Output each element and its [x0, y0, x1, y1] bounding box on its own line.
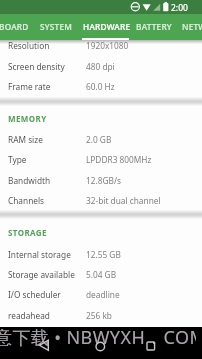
- button[interactable]: readahead: [0, 305, 202, 325]
- button[interactable]: Channels: [0, 190, 202, 210]
- button[interactable]: Internal storage: [0, 244, 202, 264]
- button[interactable]: [141, 336, 161, 356]
- staticText: BOARD: [0, 21, 29, 32]
- button[interactable]: Frame rate: [0, 76, 202, 96]
- button[interactable]: SYSTEM: [40, 15, 73, 37]
- staticText: 2:00: [171, 2, 188, 14]
- button[interactable]: Bandwidth: [0, 170, 202, 190]
- button[interactable]: [34, 335, 54, 355]
- staticText: deadline: [86, 289, 120, 300]
- staticText: Resolution: [8, 40, 50, 51]
- staticText: Bandwidth: [8, 175, 51, 186]
- staticText: RAM size: [8, 134, 43, 145]
- staticText: Channels: [8, 195, 45, 206]
- staticText: 60.0 Hz: [86, 81, 115, 92]
- staticText: Internal storage: [8, 249, 71, 260]
- staticText: 1920x1080: [86, 40, 129, 51]
- staticText: 12.8GB/s: [86, 175, 121, 186]
- staticText: 12.55 GB: [86, 249, 121, 260]
- staticText: Screen density: [8, 61, 65, 72]
- staticText: Storage available: [8, 269, 75, 280]
- button[interactable]: NETWORK: [182, 15, 202, 37]
- button[interactable]: BATTERY: [136, 15, 172, 37]
- button[interactable]: Storage available: [0, 264, 202, 284]
- button[interactable]: Screen density: [0, 56, 202, 76]
- staticText: 5.04 GB: [86, 269, 117, 280]
- button[interactable]: HARDWARE: [83, 15, 131, 37]
- staticText: SYSTEM: [40, 21, 73, 32]
- staticText: 2.0 GB: [86, 134, 112, 145]
- staticText: BATTERY: [136, 21, 172, 32]
- staticText: 32-bit dual channel: [86, 195, 161, 206]
- staticText: Frame rate: [8, 81, 51, 92]
- staticText: readahead: [8, 310, 50, 321]
- button[interactable]: [90, 336, 110, 356]
- staticText: MEMORY: [8, 113, 47, 124]
- staticText: HARDWARE: [83, 21, 131, 32]
- staticText: 256 kb: [86, 310, 112, 321]
- button[interactable]: RAM size: [0, 129, 202, 149]
- button[interactable]: I/O scheduler: [0, 284, 202, 304]
- staticText: STORAGE: [8, 227, 47, 238]
- staticText: NETWORK: [182, 21, 202, 32]
- button[interactable]: Resolution: [0, 35, 202, 55]
- staticText: 意下载 • NBWYXH．COM: [0, 325, 196, 350]
- button[interactable]: BOARD: [0, 15, 29, 37]
- staticText: LPDDR3 800MHz: [86, 154, 152, 165]
- staticText: 480 dpi: [86, 61, 115, 72]
- staticText: I/O scheduler: [8, 289, 61, 300]
- button[interactable]: Type: [0, 149, 202, 169]
- staticText: Type: [8, 154, 27, 165]
